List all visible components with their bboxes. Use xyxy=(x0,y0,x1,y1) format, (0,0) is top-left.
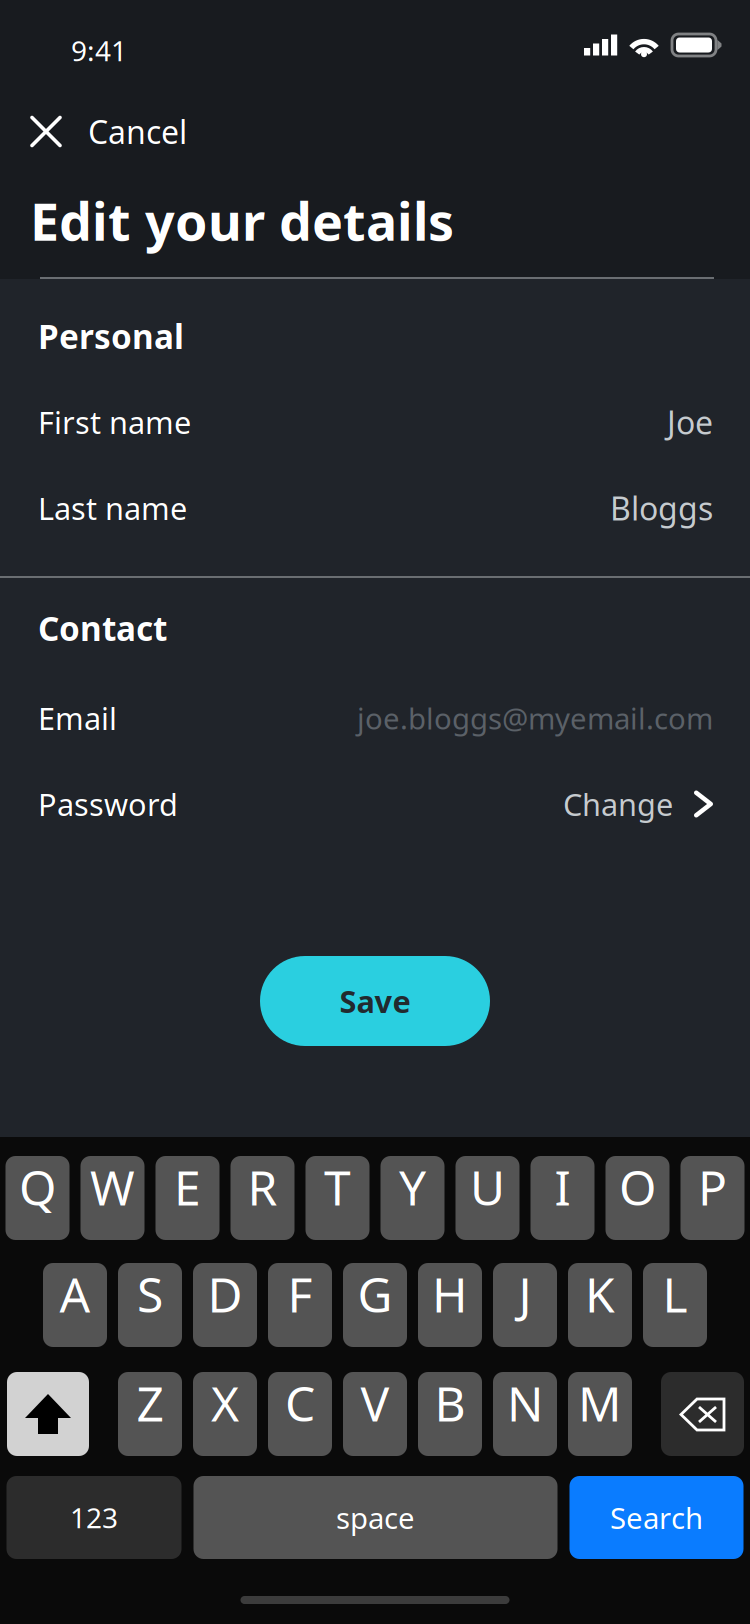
staticText: Q xyxy=(19,1155,56,1219)
button[interactable]: Y xyxy=(380,1156,444,1240)
button[interactable]: X xyxy=(193,1372,257,1456)
button[interactable]: U xyxy=(455,1156,519,1240)
staticText: space xyxy=(336,1498,415,1537)
staticText: N xyxy=(507,1371,543,1435)
staticText: joe.bloggs@myemail.com xyxy=(357,698,713,737)
staticText: M xyxy=(578,1371,622,1435)
staticText: 9:41 xyxy=(71,32,127,69)
button[interactable]: D xyxy=(193,1263,257,1347)
staticText: J xyxy=(518,1262,531,1326)
staticText: Contact xyxy=(38,606,167,650)
staticText: Password xyxy=(38,784,178,824)
staticText: I xyxy=(554,1155,570,1219)
button[interactable]: V xyxy=(343,1372,407,1456)
button[interactable]: F xyxy=(268,1263,332,1347)
button[interactable]: W xyxy=(80,1156,144,1240)
button[interactable]: First name xyxy=(0,379,750,465)
button[interactable]: Save xyxy=(260,956,490,1046)
button[interactable]: M xyxy=(568,1372,632,1456)
staticText: C xyxy=(285,1371,315,1435)
staticText: G xyxy=(357,1262,392,1326)
staticText: A xyxy=(59,1262,90,1326)
button[interactable]: H xyxy=(418,1263,482,1347)
button[interactable]: N xyxy=(493,1372,557,1456)
staticText: V xyxy=(360,1371,389,1435)
staticText: Z xyxy=(136,1371,163,1435)
button[interactable]: Z xyxy=(118,1372,182,1456)
button[interactable]: L xyxy=(643,1263,707,1347)
staticText: U xyxy=(470,1155,505,1219)
staticText: T xyxy=(324,1155,351,1219)
staticText: X xyxy=(211,1371,239,1435)
staticText: S xyxy=(137,1262,163,1326)
staticText: W xyxy=(90,1155,135,1219)
button[interactable]: Last name xyxy=(0,465,750,551)
button[interactable]: I xyxy=(530,1156,594,1240)
button[interactable]: Q xyxy=(5,1156,69,1240)
staticText: H xyxy=(432,1262,468,1326)
staticText: Edit your details xyxy=(30,186,454,255)
staticText: R xyxy=(247,1155,277,1219)
staticText: B xyxy=(434,1371,465,1435)
button[interactable]: Shift xyxy=(7,1372,89,1456)
staticText: L xyxy=(662,1262,687,1326)
staticText: D xyxy=(207,1262,242,1326)
button[interactable]: Password xyxy=(0,761,750,847)
button[interactable]: C xyxy=(268,1372,332,1456)
button[interactable]: Email xyxy=(0,675,750,761)
staticText: Email xyxy=(38,698,117,738)
staticText: Last name xyxy=(38,488,187,528)
button[interactable]: T xyxy=(305,1156,369,1240)
button[interactable]: Delete xyxy=(661,1372,744,1456)
staticText: P xyxy=(698,1155,727,1219)
staticText: First name xyxy=(38,402,191,442)
button[interactable]: Cancel xyxy=(0,101,211,162)
button[interactable]: E xyxy=(155,1156,219,1240)
staticText: Cancel xyxy=(88,110,187,153)
staticText: Save xyxy=(339,981,410,1021)
button[interactable]: S xyxy=(118,1263,182,1347)
staticText: K xyxy=(585,1262,615,1326)
button[interactable]: R xyxy=(230,1156,294,1240)
button[interactable]: J xyxy=(493,1263,557,1347)
staticText: Change xyxy=(563,784,673,824)
button[interactable]: K xyxy=(568,1263,632,1347)
staticText: 123 xyxy=(70,1499,118,1536)
button[interactable]: O xyxy=(605,1156,669,1240)
staticText: F xyxy=(287,1262,312,1326)
button[interactable]: P xyxy=(680,1156,744,1240)
staticText: Bloggs xyxy=(610,487,713,529)
button[interactable]: 123 xyxy=(6,1476,181,1559)
staticText: Search xyxy=(610,1498,703,1537)
staticText: Personal xyxy=(38,314,184,358)
button[interactable]: B xyxy=(418,1372,482,1456)
button[interactable]: space xyxy=(193,1476,557,1559)
staticText: Joe xyxy=(667,401,713,443)
button[interactable]: A xyxy=(43,1263,107,1347)
staticText: E xyxy=(174,1155,201,1219)
button[interactable]: G xyxy=(343,1263,407,1347)
staticText: O xyxy=(619,1155,656,1219)
button[interactable]: Search xyxy=(569,1476,743,1559)
staticText: Y xyxy=(399,1155,426,1219)
